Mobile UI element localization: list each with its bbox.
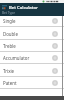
staticText: Single — [3, 18, 16, 24]
button[interactable]: Single — [0, 16, 64, 26]
staticText: Trixie — [3, 68, 15, 74]
staticText: Accumulator — [3, 55, 30, 61]
button[interactable]: Trixie — [0, 65, 64, 76]
button[interactable]: Patent — [0, 77, 64, 88]
button[interactable]: App icon — [2, 5, 7, 10]
button[interactable]: Double — [0, 28, 64, 39]
staticText: Bet Type — [2, 11, 15, 15]
staticText: Bet Calculator — [9, 4, 38, 10]
button[interactable]: Accumulator — [0, 53, 64, 63]
staticText: Patent — [3, 80, 17, 86]
staticText: Double — [3, 31, 18, 37]
staticText: Treble — [3, 43, 16, 49]
button[interactable]: Treble — [0, 40, 64, 51]
